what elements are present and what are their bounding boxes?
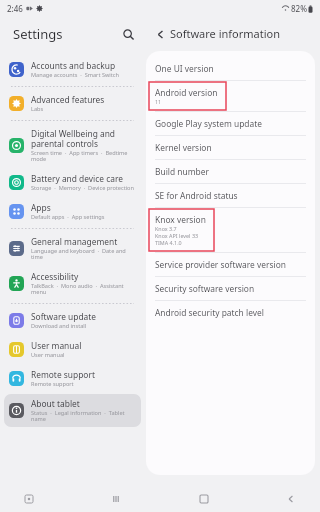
- button[interactable]: Build number: [146, 160, 315, 183]
- button[interactable]: Remote support: [4, 365, 141, 392]
- staticText: Apps: [31, 202, 51, 213]
- button[interactable]: Back: [150, 24, 170, 44]
- staticText: Battery and device care: [31, 173, 123, 184]
- staticText: One UI version: [155, 63, 214, 74]
- staticText: Kernel version: [155, 142, 212, 153]
- staticText: User manual: [31, 340, 82, 351]
- button[interactable]: Accessibility: [4, 267, 141, 300]
- button[interactable]: Google Play system update: [146, 112, 315, 135]
- staticText: Android security patch level: [155, 307, 264, 318]
- staticText: Manage accounts · Smart Switch: [31, 71, 119, 79]
- button[interactable]: User manual: [4, 336, 141, 363]
- button[interactable]: Android security patch level: [146, 301, 315, 324]
- button[interactable]: Kernel version: [146, 136, 315, 159]
- staticText: Knox API level 33: [155, 232, 199, 239]
- staticText: Accounts and backup: [31, 60, 116, 71]
- staticText: Default apps · App settings: [31, 213, 105, 221]
- staticText: 82%: [291, 3, 307, 14]
- button[interactable]: Apps: [4, 198, 141, 225]
- staticText: Knox 3.7: [155, 225, 177, 232]
- staticText: Android version: [155, 87, 218, 98]
- button[interactable]: Service provider software version: [146, 253, 315, 276]
- staticText: Knox version: [155, 214, 206, 225]
- staticText: User manual: [31, 351, 65, 359]
- staticText: Remote support: [31, 369, 95, 380]
- staticText: SE for Android status: [155, 190, 238, 201]
- staticText: Language and keyboard · Date and time: [31, 247, 126, 261]
- staticText: Security software version: [155, 283, 255, 294]
- button[interactable]: Back: [276, 486, 306, 512]
- staticText: 2:46: [7, 3, 23, 14]
- staticText: Status · Legal information · Tablet name: [31, 409, 125, 423]
- button[interactable]: SE for Android status: [146, 184, 315, 207]
- staticText: Accessibility: [31, 271, 79, 282]
- button[interactable]: Recents: [101, 486, 131, 512]
- button[interactable]: Security software version: [146, 277, 315, 300]
- staticText: Download and install: [31, 322, 87, 330]
- button[interactable]: Battery and device care: [4, 169, 141, 196]
- staticText: Remote support: [31, 380, 74, 388]
- button[interactable]: Advanced features: [4, 90, 141, 117]
- staticText: Digital Wellbeing and parental controls: [31, 128, 116, 149]
- button[interactable]: About tablet: [4, 394, 141, 427]
- staticText: Advanced features: [31, 94, 105, 105]
- button[interactable]: Android version: [146, 81, 315, 111]
- staticText: Labs: [31, 105, 44, 113]
- staticText: Build number: [155, 166, 209, 177]
- staticText: Software information: [170, 26, 280, 41]
- staticText: General management: [31, 236, 118, 247]
- button[interactable]: Search: [117, 23, 139, 45]
- staticText: Screen time · App timers · Bedtime mode: [31, 149, 128, 163]
- staticText: 11: [155, 98, 162, 105]
- staticText: Settings: [13, 25, 63, 43]
- button[interactable]: Digital Wellbeing and parental controls: [4, 124, 141, 167]
- staticText: TIMA 4.1.0: [155, 239, 182, 246]
- button[interactable]: General management: [4, 232, 141, 265]
- button[interactable]: Accounts and backup: [4, 56, 141, 83]
- button[interactable]: One UI version: [146, 57, 315, 80]
- staticText: Storage · Memory · Device protection: [31, 184, 134, 192]
- staticText: Service provider software version: [155, 259, 286, 270]
- button[interactable]: Screenshot: [14, 486, 44, 512]
- staticText: Google Play system update: [155, 118, 262, 129]
- button[interactable]: Knox version: [146, 208, 315, 252]
- staticText: TalkBack · Mono audio · Assistant menu: [31, 282, 124, 296]
- staticText: Software update: [31, 311, 97, 322]
- button[interactable]: Software update: [4, 307, 141, 334]
- button[interactable]: Home: [189, 486, 219, 512]
- staticText: About tablet: [31, 398, 80, 409]
